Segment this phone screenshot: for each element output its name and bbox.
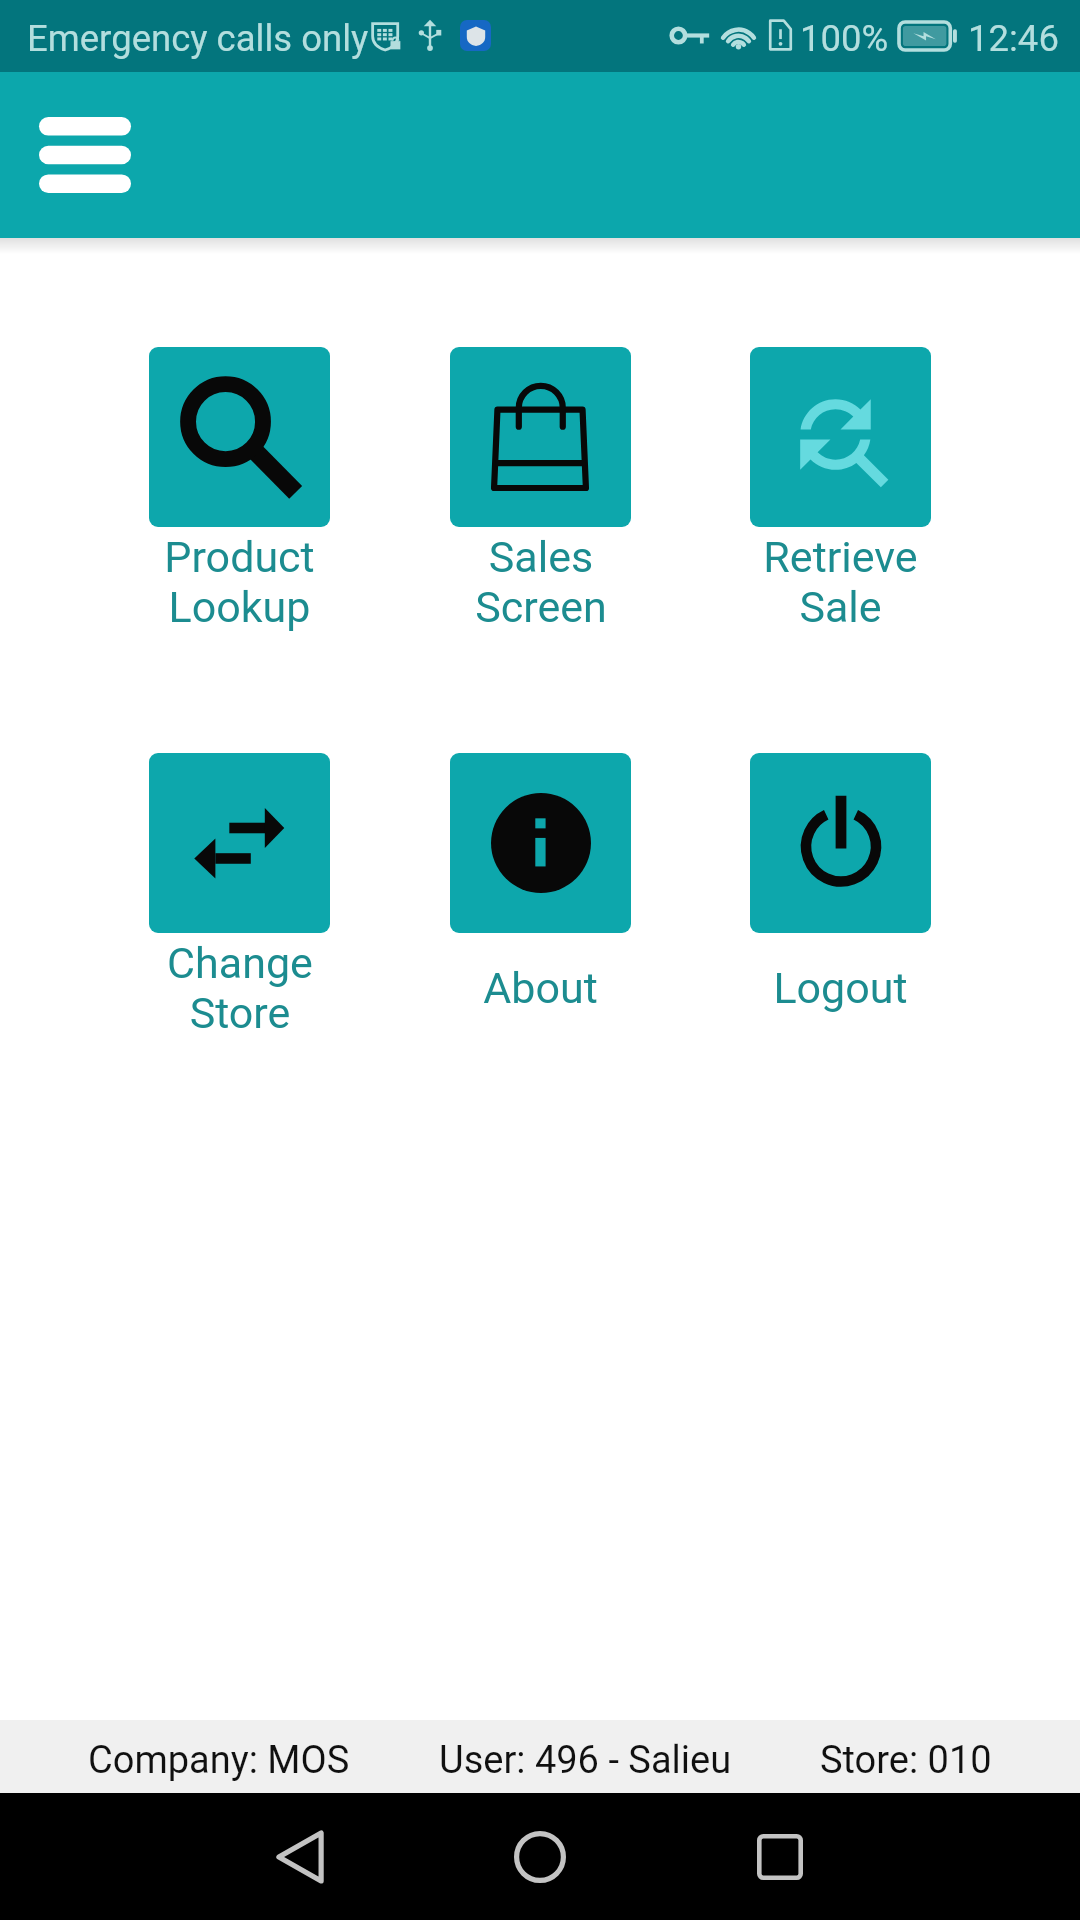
button[interactable]: Change Store	[149, 753, 330, 1038]
staticText: Product Lookup	[164, 532, 315, 632]
button[interactable]: Sales Screen	[450, 347, 631, 632]
staticText: 12:46	[968, 17, 1059, 60]
staticText: Retrieve Sale	[763, 532, 918, 632]
staticText: About	[483, 963, 598, 1013]
staticText: Store: 010	[820, 1738, 992, 1783]
staticText: 100%	[800, 17, 889, 60]
button[interactable]: Logout	[750, 753, 931, 1038]
button[interactable]: Back	[240, 1797, 360, 1917]
button[interactable]: About	[450, 753, 631, 1038]
button[interactable]: Home	[480, 1797, 600, 1917]
staticText: Logout	[773, 963, 908, 1013]
staticText: User: 496 - Salieu	[439, 1738, 732, 1783]
button[interactable]: Product Lookup	[149, 347, 330, 632]
staticText: Change Store	[167, 938, 313, 1038]
button[interactable]: Open navigation menu	[31, 101, 139, 209]
button[interactable]: Recent apps	[720, 1797, 840, 1917]
staticText: Emergency calls only	[27, 17, 369, 60]
staticText: Sales Screen	[475, 532, 607, 632]
staticText: Company: MOS	[88, 1738, 350, 1783]
button[interactable]: Retrieve Sale	[750, 347, 931, 632]
